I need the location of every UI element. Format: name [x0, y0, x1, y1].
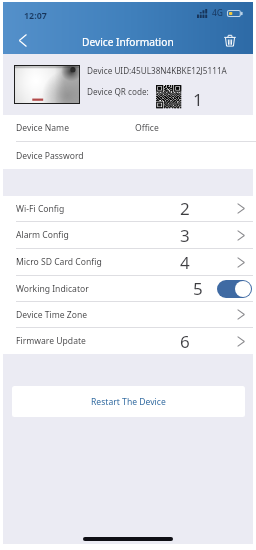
- button[interactable]: Wi-Fi Config: [3, 196, 253, 221]
- staticText: 2: [180, 197, 190, 220]
- button[interactable]: Device Password: [3, 142, 253, 169]
- staticText: Device Password: [16, 150, 84, 162]
- staticText: 4: [180, 251, 190, 274]
- staticText: Device QR code:: [87, 86, 149, 97]
- staticText: 6: [180, 330, 190, 353]
- button[interactable]: Working Indicator: [3, 276, 253, 301]
- button[interactable]: Delete device: [215, 27, 245, 53]
- staticText: Firmware Update: [16, 335, 86, 347]
- staticText: 3: [180, 224, 190, 247]
- staticText: Device Information: [82, 35, 174, 49]
- staticText: Micro SD Card Config: [16, 256, 102, 268]
- button[interactable]: Device snapshot: [15, 66, 79, 103]
- staticText: 4G: [212, 7, 224, 19]
- staticText: Office: [135, 122, 159, 134]
- button[interactable]: Alarm Config: [3, 222, 253, 248]
- button[interactable]: Restart The Device: [12, 386, 245, 417]
- button[interactable]: Firmware Update: [3, 328, 253, 354]
- staticText: Device Time Zone: [16, 309, 88, 321]
- staticText: 1: [193, 88, 203, 111]
- staticText: Restart The Device: [91, 396, 166, 408]
- staticText: 12:07: [24, 9, 47, 21]
- button[interactable]: Device Name: [3, 115, 253, 141]
- staticText: 5: [193, 277, 203, 300]
- staticText: Wi-Fi Config: [16, 203, 65, 215]
- button[interactable]: Device Time Zone: [3, 302, 253, 327]
- staticText: Device Name: [16, 122, 69, 134]
- button[interactable]: Back: [8, 27, 38, 53]
- staticText: Working Indicator: [16, 283, 89, 295]
- staticText: Device UID:45UL38N4KBKE12J5111A: [87, 65, 227, 76]
- button[interactable]: QR code: [156, 85, 181, 108]
- button[interactable]: Micro SD Card Config: [3, 249, 253, 275]
- button[interactable]: Working indicator toggle: [217, 280, 252, 298]
- staticText: Alarm Config: [16, 229, 69, 241]
